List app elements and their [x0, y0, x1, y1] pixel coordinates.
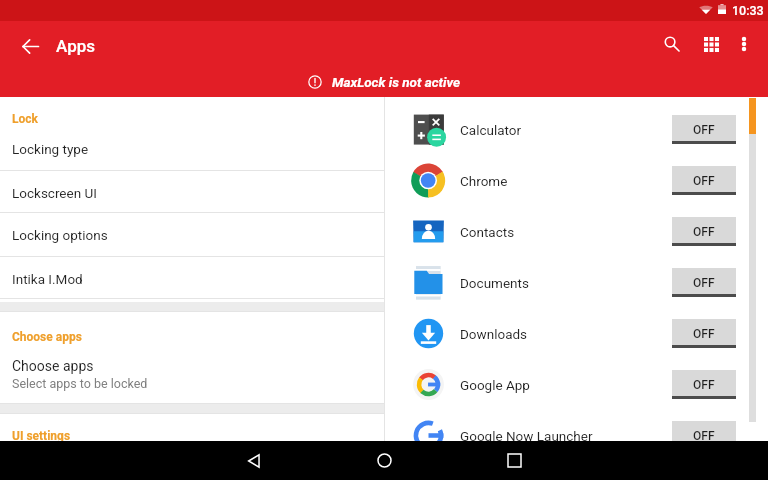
button[interactable]: Chrome	[385, 155, 768, 206]
button[interactable]: Apps grid	[691, 24, 731, 64]
staticText: Choose apps	[12, 330, 82, 344]
staticText: Select apps to be locked	[12, 376, 148, 391]
button[interactable]: Downloads	[385, 308, 768, 359]
button[interactable]: Search	[652, 24, 692, 64]
button[interactable]: OFF	[672, 166, 736, 195]
staticText: Apps	[56, 36, 95, 56]
staticText: Chrome	[460, 173, 508, 189]
button[interactable]: Documents	[385, 257, 768, 308]
staticText: OFF	[693, 378, 715, 392]
staticText: Google App	[460, 377, 530, 393]
button[interactable]: Lockscreen UI	[0, 171, 384, 215]
button[interactable]: Intika I.Mod	[0, 257, 384, 301]
staticText: Choose apps	[12, 358, 94, 374]
button[interactable]: Navigate up	[8, 24, 52, 68]
staticText: Intika I.Mod	[12, 271, 83, 287]
staticText: OFF	[693, 174, 715, 188]
button[interactable]: Choose apps	[0, 349, 384, 399]
button[interactable]: Recent apps	[449, 441, 579, 480]
button[interactable]: OFF	[672, 370, 736, 399]
button[interactable]: Google App	[385, 359, 768, 410]
button[interactable]: OFF	[672, 421, 736, 450]
staticText: OFF	[693, 225, 715, 239]
button[interactable]: Back	[189, 441, 319, 480]
staticText: Calculator	[460, 122, 522, 138]
button[interactable]: Locking type	[0, 127, 384, 171]
staticText: Lockscreen UI	[12, 185, 97, 201]
button[interactable]: OFF	[672, 268, 736, 297]
button[interactable]: OFF	[672, 217, 736, 246]
button[interactable]: More options	[724, 24, 764, 64]
button[interactable]: Calculator	[385, 104, 768, 155]
staticText: Documents	[460, 275, 529, 291]
staticText: OFF	[693, 429, 715, 443]
button[interactable]: OFF	[672, 319, 736, 348]
staticText: OFF	[693, 276, 715, 290]
staticText: OFF	[693, 123, 715, 137]
staticText: Contacts	[460, 224, 515, 240]
staticText: OFF	[693, 327, 715, 341]
button[interactable]: Google Now Launcher	[385, 410, 768, 461]
staticText: Downloads	[460, 326, 528, 342]
staticText: Locking options	[12, 227, 108, 243]
staticText: MaxLock is not active	[332, 74, 461, 90]
button[interactable]: Contacts	[385, 206, 768, 257]
button[interactable]: Home	[319, 441, 449, 480]
staticText: Google Now Launcher	[460, 428, 593, 444]
staticText: UI settings	[12, 429, 71, 443]
staticText: Locking type	[12, 141, 89, 157]
staticText: Lock	[12, 112, 38, 126]
button[interactable]: OFF	[672, 115, 736, 144]
button[interactable]: Locking options	[0, 213, 384, 257]
staticText: 10:33	[732, 3, 764, 18]
